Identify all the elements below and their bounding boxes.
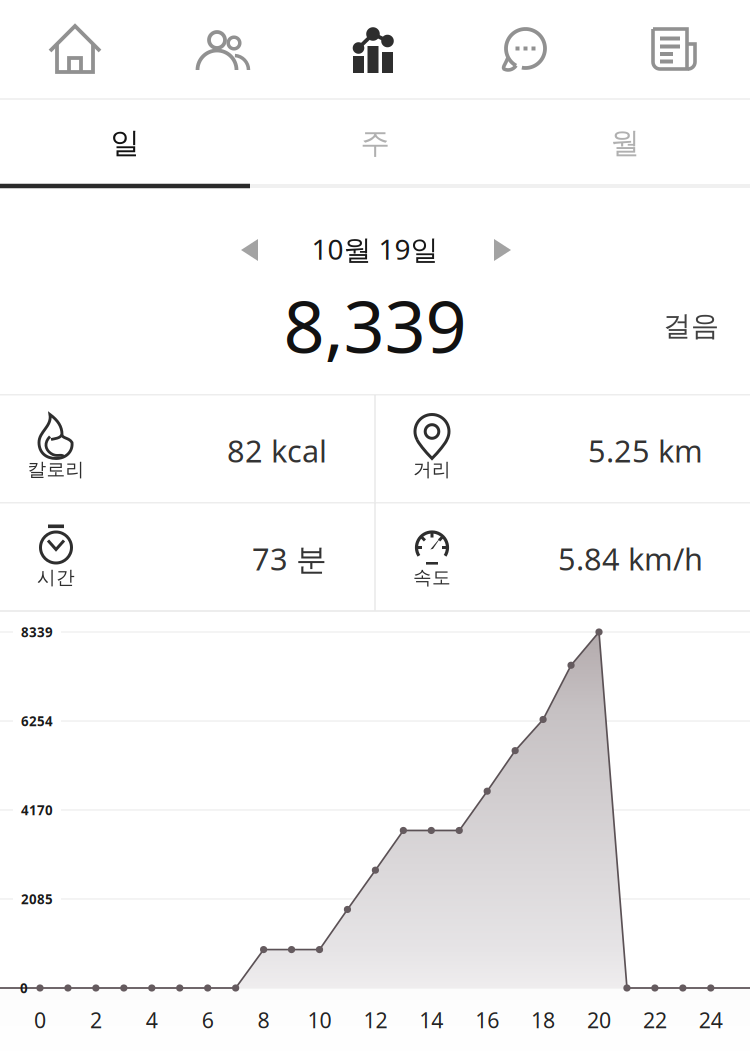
staticText: 2	[90, 1006, 102, 1034]
staticText: 월	[610, 125, 639, 161]
staticText: 2085	[21, 890, 53, 908]
staticText: 20	[587, 1006, 611, 1034]
button[interactable]: Next day	[490, 237, 514, 263]
staticText: 18	[531, 1006, 555, 1034]
staticText: 주	[360, 125, 389, 161]
staticText: 칼로리	[27, 458, 84, 481]
button[interactable]: 월	[500, 101, 750, 185]
button[interactable]: Friends	[150, 0, 300, 98]
staticText: 4	[146, 1006, 158, 1034]
button[interactable]: 주	[250, 101, 500, 185]
button[interactable]: Home	[0, 0, 150, 98]
staticText: 6254	[21, 712, 53, 730]
staticText: 82 kcal	[227, 430, 327, 471]
button[interactable]: Previous day	[238, 237, 262, 263]
button[interactable]: 일	[0, 101, 250, 185]
staticText: 10	[307, 1006, 331, 1034]
staticText: 24	[699, 1006, 723, 1034]
staticText: 14	[419, 1006, 443, 1034]
staticText: 22	[643, 1006, 667, 1034]
staticText: 10월 19일	[311, 230, 438, 268]
button[interactable]: Statistics	[300, 0, 450, 98]
staticText: 6	[202, 1006, 214, 1034]
button[interactable]: News	[600, 0, 750, 98]
staticText: 5.84 km/h	[558, 538, 703, 579]
button[interactable]: 칼로리	[0, 395, 374, 502]
staticText: 4170	[21, 801, 53, 819]
button[interactable]: 속도	[376, 503, 750, 610]
staticText: 0	[20, 979, 28, 997]
staticText: 0	[34, 1006, 46, 1034]
staticText: 걸음	[663, 309, 719, 343]
staticText: 8339	[21, 623, 53, 641]
staticText: 73 분	[252, 538, 327, 579]
staticText: 8,339	[283, 277, 466, 373]
staticText: 8	[258, 1006, 270, 1034]
button[interactable]: 거리	[376, 395, 750, 502]
staticText: 속도	[413, 566, 451, 589]
button[interactable]: Messages	[450, 0, 600, 98]
staticText: 12	[363, 1006, 387, 1034]
staticText: 거리	[413, 458, 451, 481]
staticText: 일	[110, 125, 139, 161]
button[interactable]: 시간	[0, 503, 374, 610]
staticText: 5.25 km	[588, 430, 703, 471]
staticText: 시간	[37, 566, 75, 589]
staticText: 16	[475, 1006, 499, 1034]
